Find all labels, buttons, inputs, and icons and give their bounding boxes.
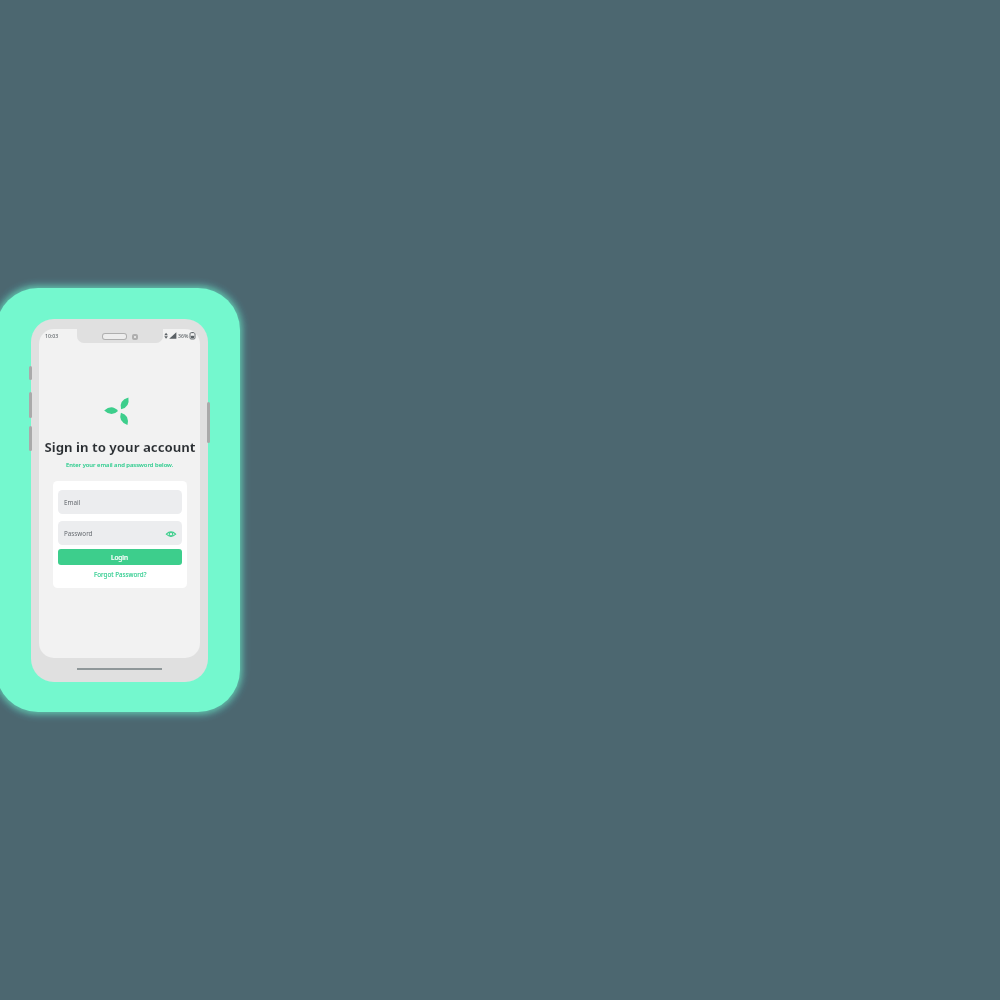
staticText: 36% xyxy=(178,332,189,339)
staticText: Enter your email and password below. xyxy=(66,461,174,469)
button[interactable]: Show password xyxy=(165,528,176,539)
staticText: Password xyxy=(64,529,93,538)
staticText: Forgot Password? xyxy=(94,570,147,579)
button[interactable]: Email xyxy=(58,490,182,514)
button[interactable]: Login xyxy=(58,549,182,565)
staticText: 10:03 xyxy=(45,332,59,339)
staticText: Email xyxy=(64,498,81,507)
staticText: Sign in to your account xyxy=(44,438,196,456)
button[interactable]: Forgot Password? xyxy=(58,570,182,579)
staticText: Login xyxy=(111,553,129,562)
button[interactable]: Password xyxy=(58,521,182,545)
